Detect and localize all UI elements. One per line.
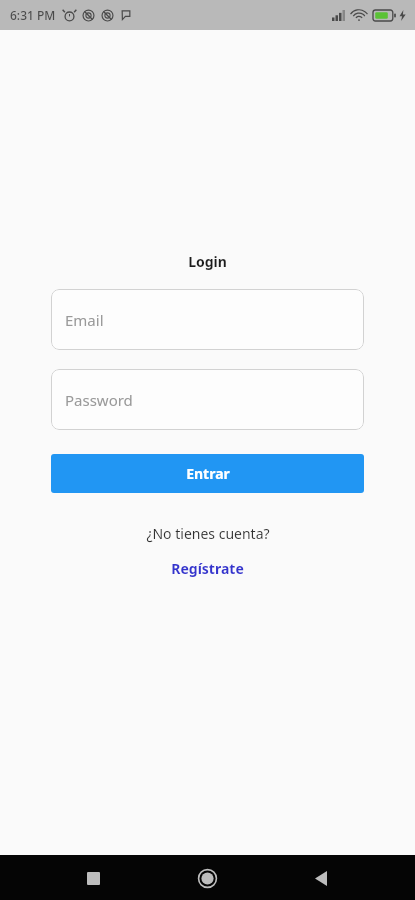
staticText: 6:31 PM [10,7,56,23]
staticText: Regístrate [171,559,244,578]
staticText: ¿No tienes cuenta? [146,524,270,543]
staticText: Login [188,252,227,271]
staticText: Email [65,310,104,330]
button[interactable]: Home [187,858,227,898]
button[interactable]: Recent apps [73,858,113,898]
button[interactable]: Regístrate [163,556,252,581]
staticText: Password [65,390,133,410]
button[interactable]: Back [301,858,341,898]
button[interactable]: Email [51,289,364,350]
button[interactable]: Password [51,369,364,430]
button[interactable]: Entrar [51,454,364,493]
staticText: Entrar [186,464,230,483]
